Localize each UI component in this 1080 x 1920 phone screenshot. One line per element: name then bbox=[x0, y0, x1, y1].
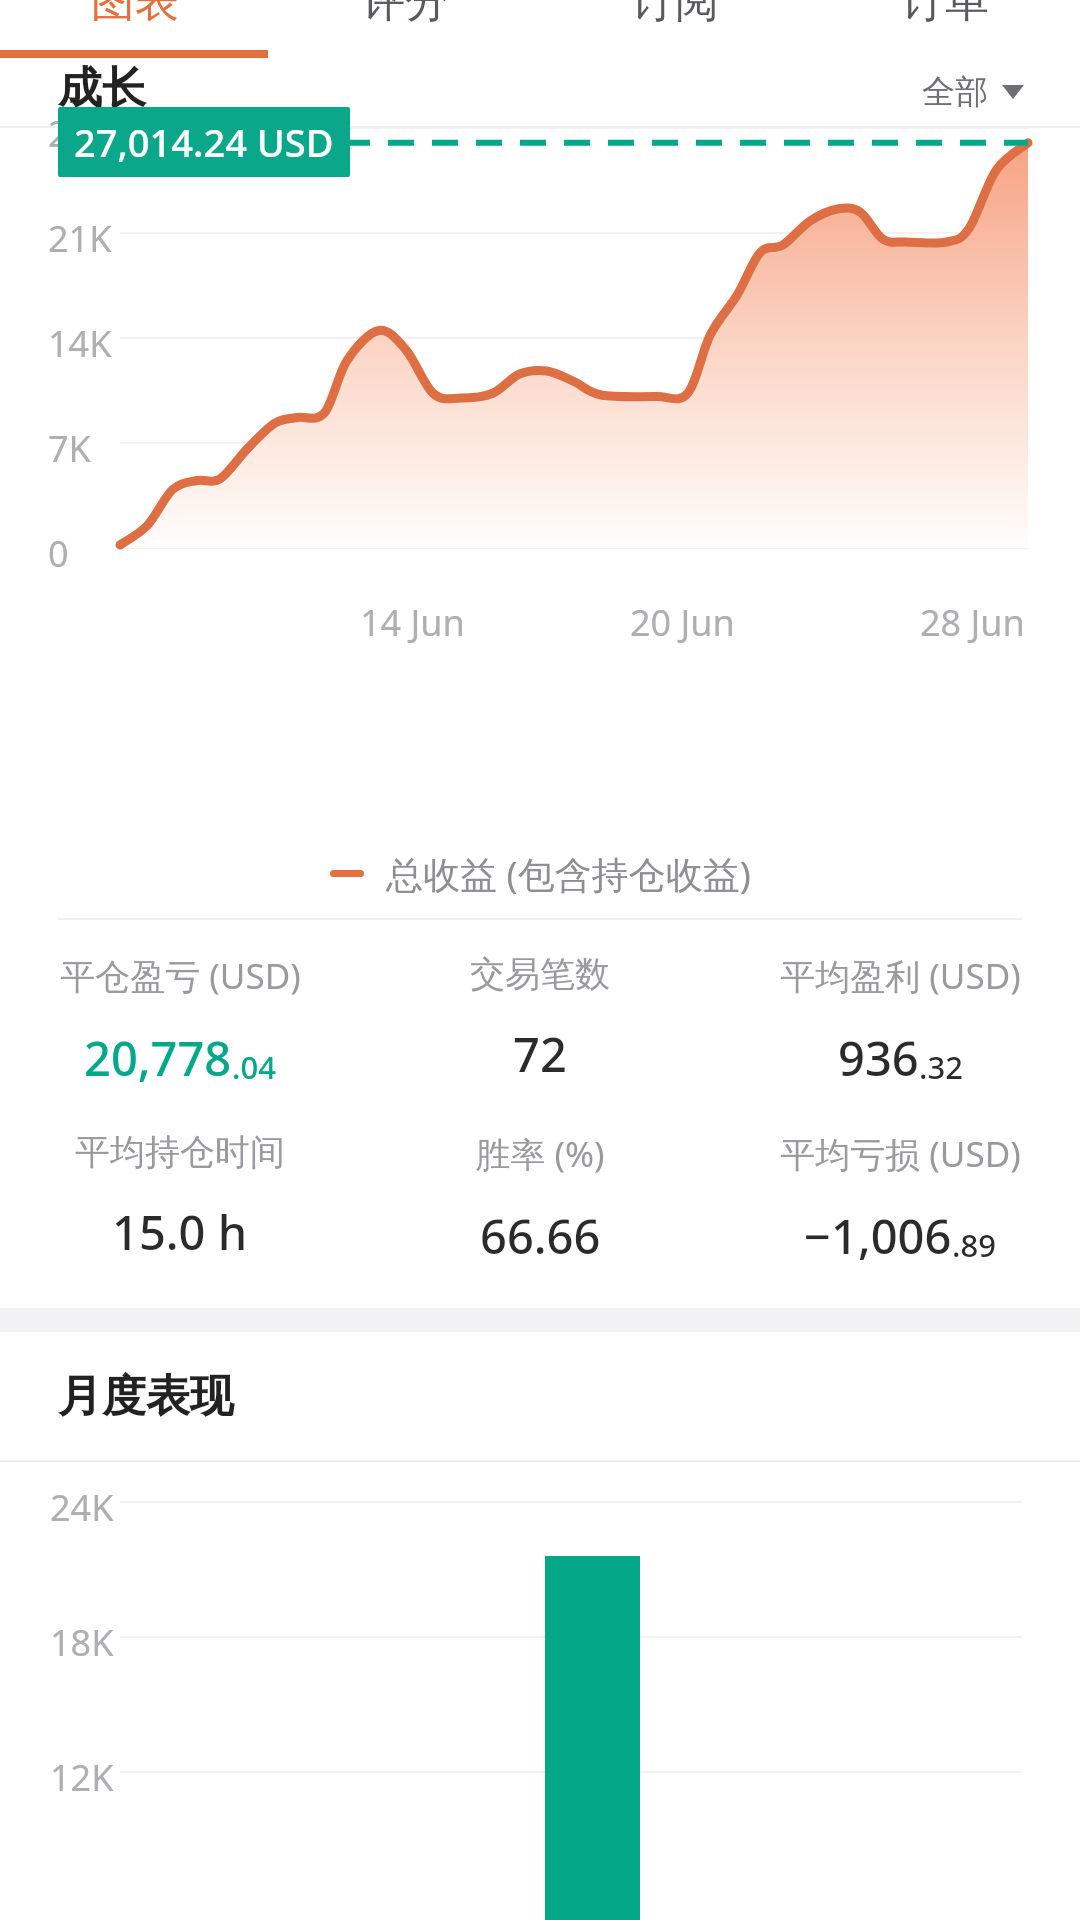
staticText: .32 bbox=[919, 1046, 963, 1088]
button[interactable]: 总收益 (包含持仓收益) bbox=[0, 828, 1080, 918]
staticText: 24K bbox=[50, 1483, 114, 1532]
staticText: .04 bbox=[232, 1046, 276, 1088]
staticText: 15.0 h bbox=[112, 1200, 248, 1264]
button[interactable]: 全部 bbox=[916, 65, 1030, 119]
staticText: 平均盈利 (USD) bbox=[780, 952, 1021, 1000]
button[interactable]: 平均亏损 (USD) bbox=[720, 1126, 1080, 1272]
staticText: −1,006 bbox=[804, 1204, 952, 1268]
staticText: 平仓盈亏 (USD) bbox=[60, 952, 301, 1000]
button[interactable]: 胜率 (%) bbox=[360, 1126, 720, 1272]
staticText: 成长 bbox=[58, 61, 146, 116]
staticText: 0 bbox=[48, 529, 69, 578]
staticText: 胜率 (%) bbox=[475, 1130, 605, 1178]
staticText: 全部 bbox=[922, 71, 988, 113]
staticText: 28K bbox=[48, 109, 112, 158]
staticText: .89 bbox=[952, 1224, 996, 1266]
button[interactable]: 订单 bbox=[810, 0, 1080, 58]
button[interactable]: 交易笔数 bbox=[360, 948, 720, 1090]
button[interactable]: 评分 bbox=[270, 0, 540, 58]
staticText: 20 Jun bbox=[630, 598, 735, 647]
staticText: 平均持仓时间 bbox=[75, 1130, 285, 1174]
button[interactable]: 平均盈利 (USD) bbox=[720, 948, 1080, 1094]
staticText: 936 bbox=[838, 1026, 919, 1090]
staticText: 图表 bbox=[91, 0, 179, 29]
staticText: 订单 bbox=[901, 0, 989, 29]
button[interactable]: 图表 bbox=[0, 0, 270, 58]
staticText: 月度表现 bbox=[58, 1369, 234, 1424]
staticText: 66.66 bbox=[480, 1204, 601, 1268]
staticText: 14 Jun bbox=[360, 598, 465, 647]
staticText: 18K bbox=[50, 1618, 114, 1667]
button[interactable]: 平均持仓时间 bbox=[0, 1126, 360, 1268]
button[interactable]: 平仓盈亏 (USD) bbox=[0, 948, 360, 1094]
staticText: 21K bbox=[48, 214, 112, 263]
staticText: 评分 bbox=[361, 0, 449, 29]
staticText: 27,014.24 USD bbox=[74, 116, 334, 168]
staticText: 订阅 bbox=[631, 0, 719, 29]
staticText: 20,778 bbox=[84, 1026, 232, 1090]
staticText: 交易笔数 bbox=[470, 952, 610, 996]
staticText: 14K bbox=[48, 319, 112, 368]
staticText: 72 bbox=[513, 1022, 567, 1086]
button[interactable]: 订阅 bbox=[540, 0, 810, 58]
staticText: 总收益 (包含持仓收益) bbox=[386, 848, 751, 899]
staticText: 12K bbox=[50, 1753, 114, 1802]
staticText: 28 Jun bbox=[920, 598, 1025, 647]
staticText: 7K bbox=[48, 424, 91, 473]
staticText: 平均亏损 (USD) bbox=[780, 1130, 1021, 1178]
